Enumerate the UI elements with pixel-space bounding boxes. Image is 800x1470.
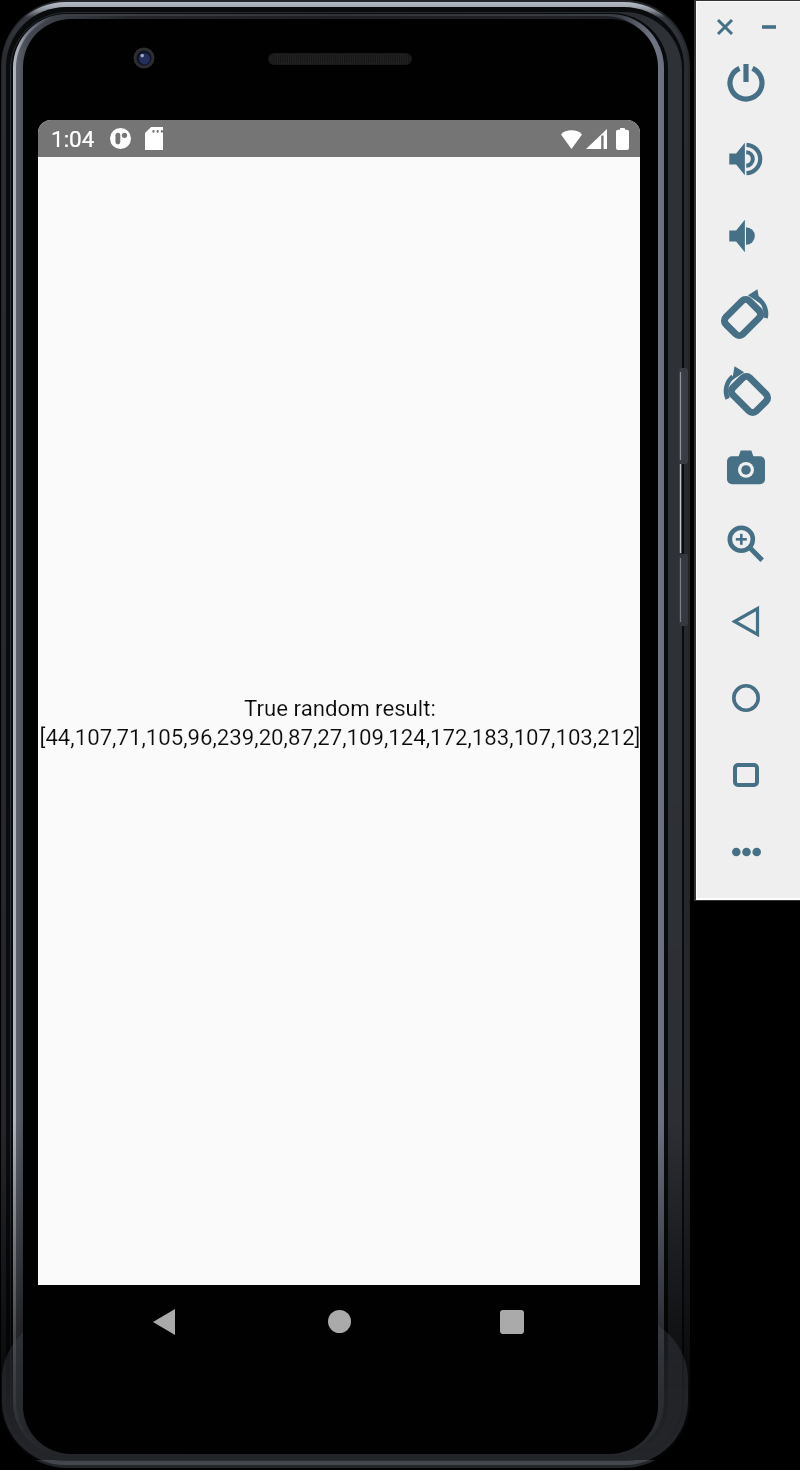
button[interactable]: Rotate right xyxy=(720,364,772,416)
button[interactable]: Home xyxy=(720,672,772,724)
button[interactable]: Close xyxy=(711,13,739,41)
button[interactable]: Zoom xyxy=(720,518,772,570)
button[interactable]: Recent apps xyxy=(479,1289,545,1355)
button[interactable]: More xyxy=(720,826,772,878)
button[interactable]: Back xyxy=(720,595,772,647)
button[interactable]: Rotate left xyxy=(720,287,772,339)
staticText: 1:04 xyxy=(51,126,95,152)
button[interactable]: Home xyxy=(306,1288,372,1354)
staticText: True random result: [44,107,71,105,96,23… xyxy=(39,695,640,750)
button[interactable]: Power xyxy=(720,56,772,108)
button[interactable]: Back xyxy=(131,1289,197,1355)
button[interactable]: Minimize xyxy=(755,13,783,41)
button[interactable]: Volume down xyxy=(720,210,772,262)
button[interactable]: Take screenshot xyxy=(720,441,772,493)
button[interactable]: Overview xyxy=(720,749,772,801)
button[interactable]: Volume up xyxy=(720,133,772,185)
